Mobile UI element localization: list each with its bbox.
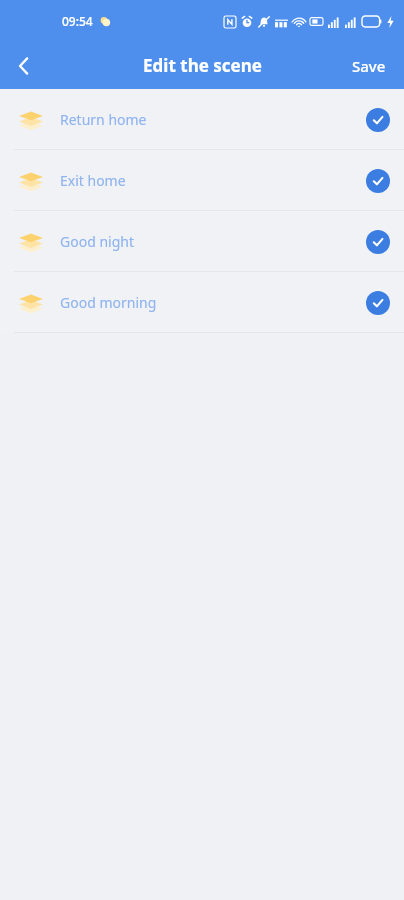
staticText: Save	[352, 56, 386, 76]
staticText: Good morning	[60, 293, 157, 312]
staticText: Return home	[60, 110, 147, 129]
button[interactable]: Selected	[366, 108, 390, 132]
button[interactable]: Selected	[366, 230, 390, 254]
button[interactable]: Selected	[366, 291, 390, 315]
button[interactable]: Save	[334, 42, 404, 89]
button[interactable]: Good morning	[0, 272, 404, 333]
button[interactable]: Good night	[0, 211, 404, 272]
button[interactable]: Exit home	[0, 150, 404, 211]
button[interactable]: Return home	[0, 89, 404, 150]
staticText: Edit the scene	[143, 54, 262, 77]
staticText: 09:54	[62, 13, 93, 29]
staticText: Exit home	[60, 171, 126, 190]
staticText: Good night	[60, 232, 134, 251]
button[interactable]: Selected	[366, 169, 390, 193]
button[interactable]: Back	[0, 42, 48, 89]
